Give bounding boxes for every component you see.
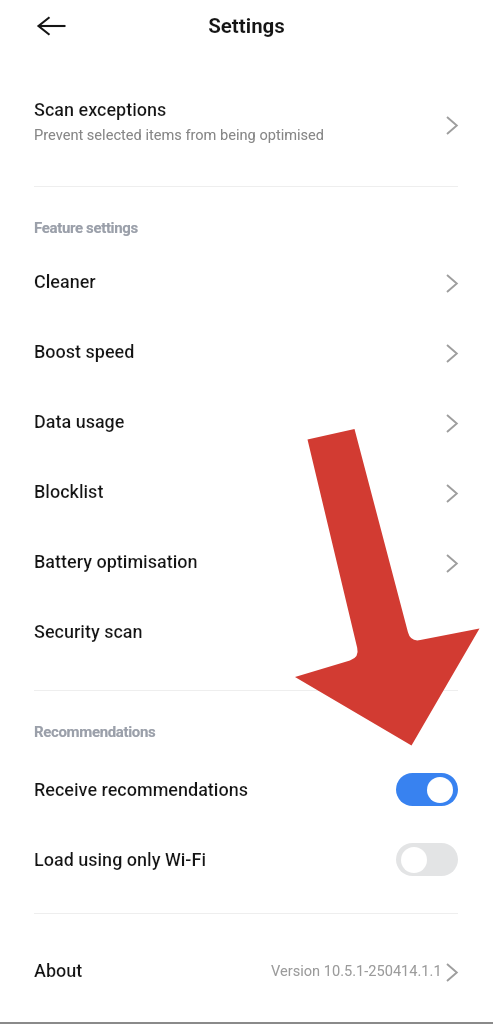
staticText: About bbox=[34, 960, 83, 981]
button[interactable]: Scan exceptions bbox=[0, 88, 493, 160]
staticText: Recommendations bbox=[34, 723, 156, 741]
staticText: Security scan bbox=[34, 621, 143, 642]
staticText: Blocklist bbox=[34, 481, 104, 502]
button[interactable]: Boost speed bbox=[0, 316, 493, 386]
staticText: Data usage bbox=[34, 411, 125, 432]
staticText: Boost speed bbox=[34, 341, 135, 362]
button[interactable]: About bbox=[0, 935, 493, 1005]
staticText: Version 10.5.1-250414.1.1 bbox=[271, 962, 442, 979]
staticText: Scan exceptions bbox=[34, 99, 167, 120]
button[interactable]: Battery optimisation bbox=[0, 526, 493, 596]
button[interactable]: Cleaner bbox=[0, 246, 493, 316]
staticText: Settings bbox=[0, 14, 493, 38]
staticText: Cleaner bbox=[34, 271, 96, 292]
button[interactable] bbox=[396, 773, 458, 806]
button[interactable] bbox=[396, 843, 458, 876]
button[interactable]: Receive recommendations bbox=[0, 754, 493, 824]
staticText: Prevent selected items from being optimi… bbox=[34, 126, 325, 143]
button[interactable]: Back bbox=[30, 4, 74, 48]
staticText: Battery optimisation bbox=[34, 551, 198, 572]
staticText: Load using only Wi-Fi bbox=[34, 849, 206, 870]
button[interactable]: Security scan bbox=[0, 596, 493, 666]
button[interactable]: Load using only Wi-Fi bbox=[0, 824, 493, 894]
staticText: Feature settings bbox=[34, 219, 138, 237]
button[interactable]: Blocklist bbox=[0, 456, 493, 526]
staticText: Receive recommendations bbox=[34, 779, 248, 800]
button[interactable]: Data usage bbox=[0, 386, 493, 456]
